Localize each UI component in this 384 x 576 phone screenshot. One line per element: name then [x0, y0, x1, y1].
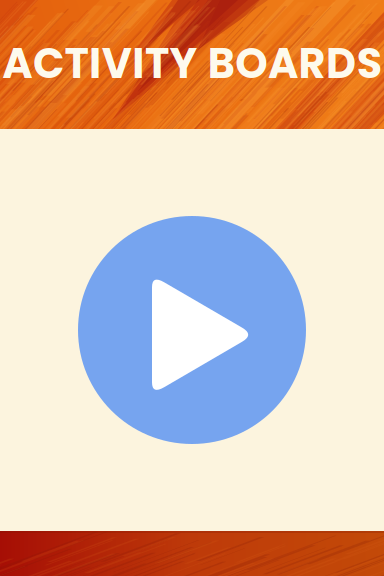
staticText: ACTIVITY BOARDS	[2, 35, 382, 92]
button[interactable]: Play	[0, 0, 384, 576]
